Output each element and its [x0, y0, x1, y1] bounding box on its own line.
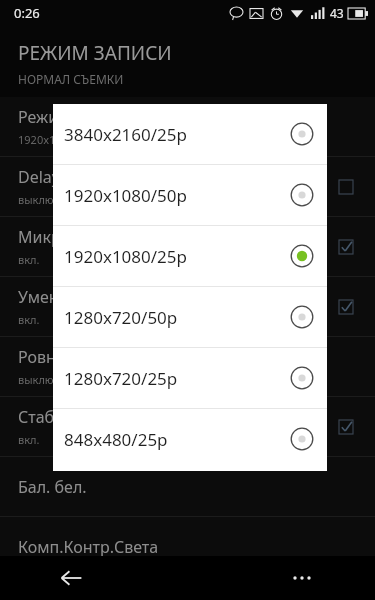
button[interactable]: Back [47, 556, 95, 600]
staticText: выключено [18, 372, 80, 387]
staticText: 43 [330, 5, 344, 21]
staticText: вкл. [18, 312, 40, 327]
staticText: РЕЖИМ ЗАПИСИ [18, 40, 172, 66]
staticText: Стабилизация [18, 406, 130, 428]
staticText: Режим записи [18, 106, 129, 128]
button[interactable]: 848x480/25p [53, 409, 327, 469]
staticText: Микрофон [18, 226, 102, 248]
button[interactable]: Комп.Контр.Света [0, 517, 375, 576]
button[interactable]: Уменьшение шума [0, 277, 375, 336]
staticText: вкл. [18, 432, 40, 447]
button[interactable]: Delay Rec. [0, 157, 375, 216]
staticText: Комп.Контр.Света [18, 536, 159, 558]
staticText: 1920x1080/25p [18, 132, 98, 147]
staticText: 3840x2160/25p [64, 123, 188, 146]
button[interactable]: Микрофон [0, 217, 375, 276]
staticText: Ровный горизонт [18, 346, 153, 368]
staticText: 1280x720/50p [64, 306, 178, 329]
button[interactable]: 1920x1080/25p [53, 226, 327, 286]
button[interactable]: 1280x720/25p [53, 348, 327, 408]
button[interactable]: 1920x1080/50p [53, 165, 327, 225]
staticText: выключено [18, 192, 80, 207]
button[interactable]: Бал. бел. [0, 457, 375, 516]
button[interactable]: More options [278, 556, 326, 600]
button[interactable]: 3840x2160/25p [53, 104, 327, 164]
staticText: 1920x1080/50p [64, 184, 188, 207]
button[interactable]: Режим записи [0, 97, 375, 156]
staticText: НОРМАЛ СЪЕМКИ [18, 71, 124, 87]
staticText: 0:26 [14, 4, 40, 22]
button[interactable]: Ровный горизонт [0, 337, 375, 396]
staticText: Delay Rec. [18, 166, 96, 188]
staticText: 1920x1080/25p [64, 245, 188, 268]
staticText: 1280x720/25p [64, 367, 178, 390]
staticText: 848x480/25p [64, 428, 168, 451]
staticText: Уменьшение шума [18, 286, 167, 308]
staticText: вкл. [18, 252, 40, 267]
button[interactable]: Стабилизация [0, 397, 375, 456]
button[interactable]: 1280x720/50p [53, 287, 327, 347]
staticText: Бал. бел. [18, 476, 87, 498]
